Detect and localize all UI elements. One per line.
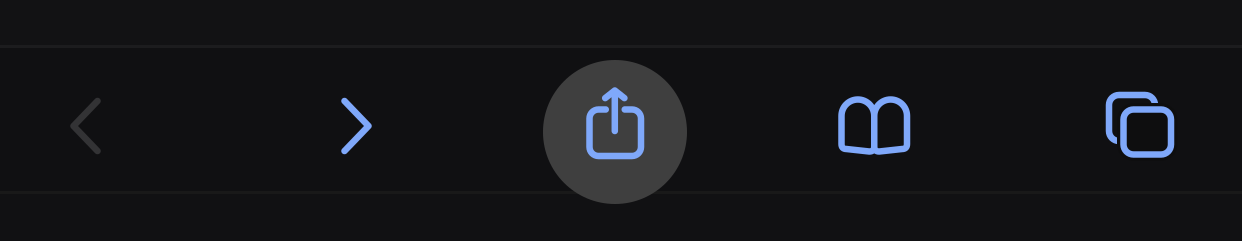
button[interactable]: Bookmarks <box>0 0 1242 241</box>
button[interactable]: Tabs <box>0 0 1242 241</box>
button[interactable]: Share <box>0 0 1242 241</box>
button[interactable]: Back <box>0 0 1242 241</box>
button[interactable]: Forward <box>0 0 1242 241</box>
